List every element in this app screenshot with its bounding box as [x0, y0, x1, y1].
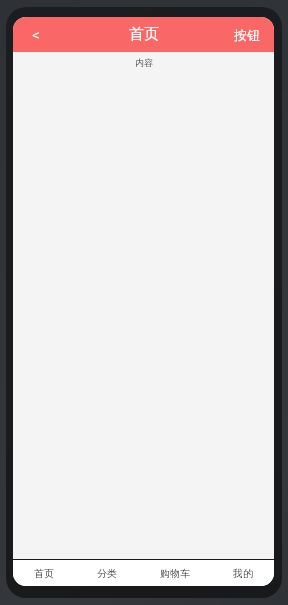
staticText: 首页	[34, 567, 54, 580]
button[interactable]: Back	[13, 17, 59, 52]
staticText: 我的	[233, 567, 253, 580]
staticText: 购物车	[160, 567, 190, 580]
staticText: 分类	[97, 567, 117, 580]
button[interactable]: 分类	[91, 560, 123, 586]
button[interactable]: 我的	[227, 560, 259, 586]
staticText: 首页	[129, 25, 159, 44]
button[interactable]: 首页	[28, 560, 60, 586]
button[interactable]: 购物车	[154, 560, 196, 586]
button[interactable]: 按钮	[220, 17, 274, 52]
staticText: 按钮	[234, 27, 260, 43]
staticText: <	[32, 26, 40, 44]
staticText: 内容	[135, 57, 153, 68]
